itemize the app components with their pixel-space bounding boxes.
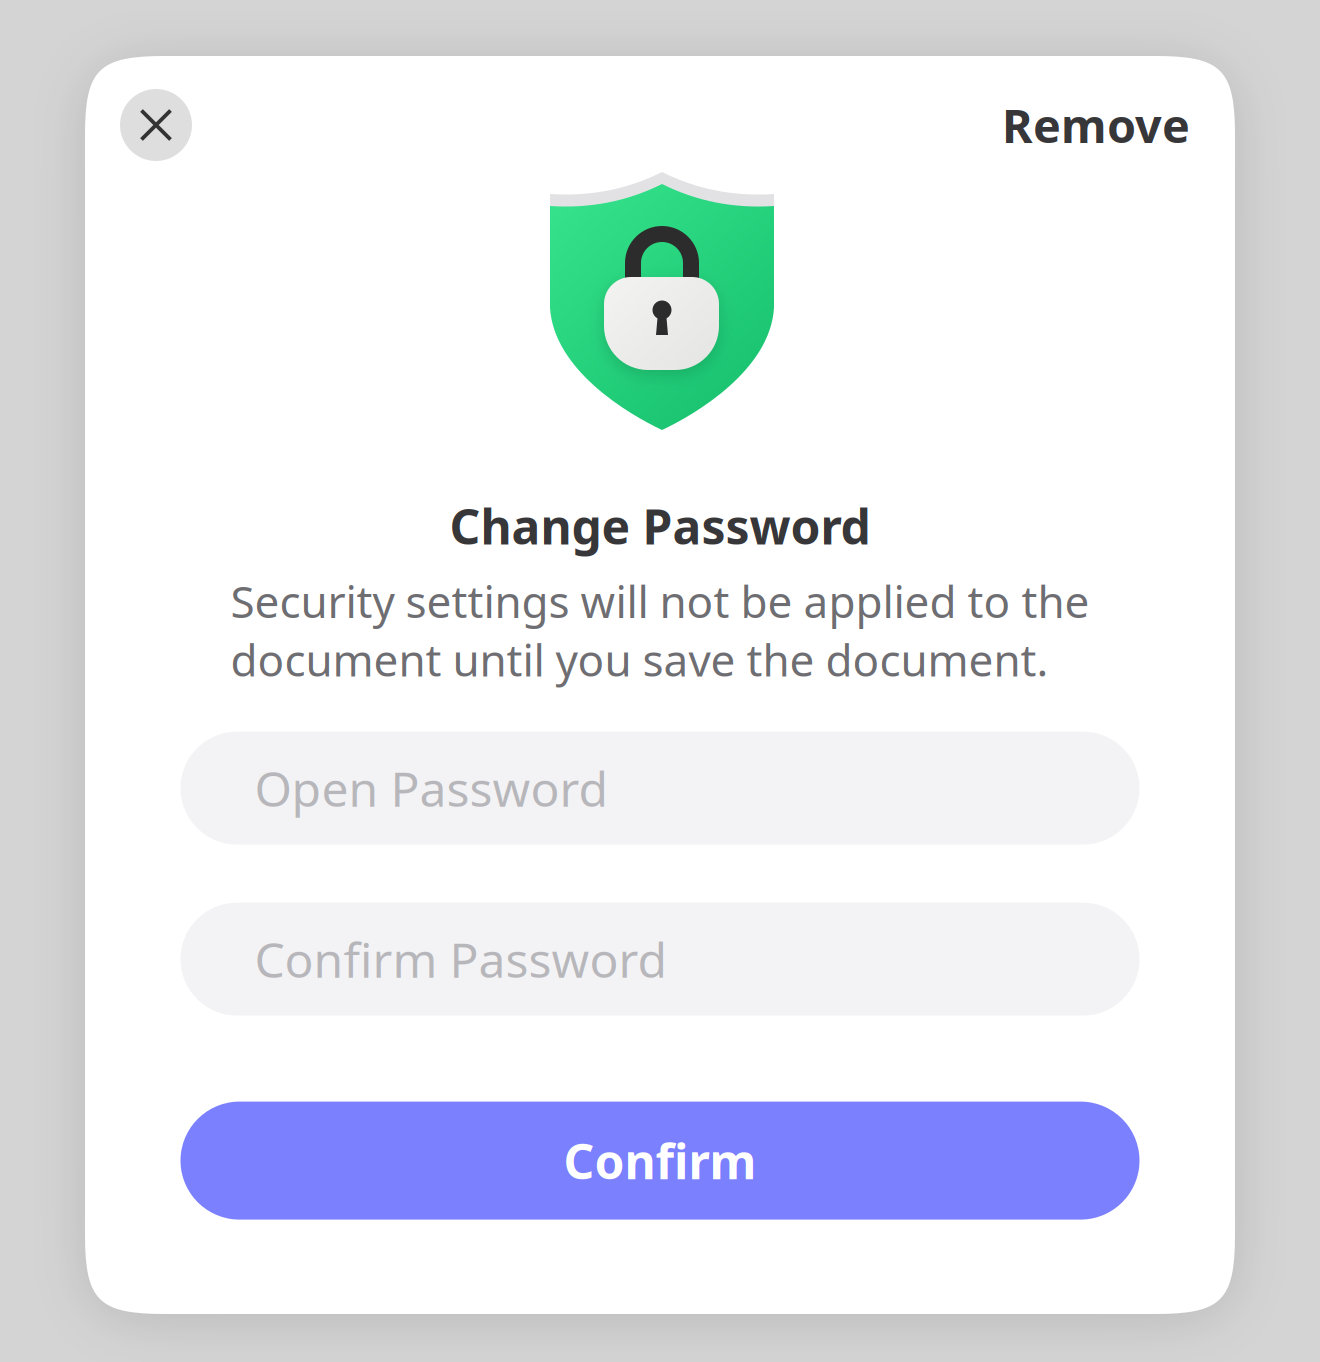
- staticText: Remove: [1002, 94, 1190, 156]
- staticText: Change Password: [449, 494, 870, 558]
- staticText: Confirm Password: [254, 927, 667, 991]
- button[interactable]: Open Password: [180, 732, 1139, 845]
- button[interactable]: Confirm: [180, 1102, 1139, 1220]
- button[interactable]: Close: [120, 89, 192, 161]
- staticText: Confirm: [563, 1129, 756, 1192]
- button[interactable]: Remove: [1002, 94, 1190, 156]
- button[interactable]: Confirm Password: [180, 903, 1139, 1016]
- staticText: Open Password: [254, 756, 608, 820]
- staticText: Security settings will not be applied to…: [230, 572, 1089, 689]
